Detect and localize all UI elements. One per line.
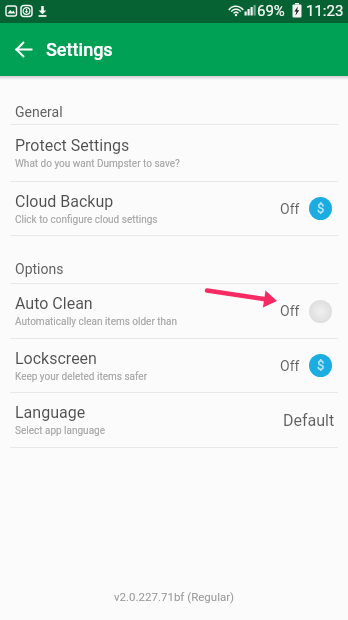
staticText: Default [283,411,335,430]
staticText: Click to configure cloud settings [15,214,158,226]
staticText: Automatically clean items older than [15,316,178,328]
button[interactable]: Protect Settings [0,125,348,181]
staticText: $ [317,201,325,216]
staticText: Off [280,303,300,319]
staticText: Options [15,261,64,277]
staticText: Language [15,403,86,422]
staticText: 11:23 [306,2,344,20]
staticText: Off [280,358,300,374]
staticText: Protect Settings [15,136,130,155]
staticText: Lockscreen [15,349,97,368]
staticText: v2.0.227.71bf (Regular) [114,590,235,603]
staticText: Settings [46,39,113,60]
staticText: Select app language [15,425,105,437]
button[interactable]: Cloud Backup [0,182,348,235]
staticText: $ [317,358,325,373]
staticText: Cloud Backup [15,192,114,211]
staticText: Auto Clean [15,294,93,313]
button[interactable] [8,34,40,66]
staticText: Keep your deleted items safer [15,371,148,383]
staticText: 69% [257,2,285,20]
button[interactable]: Auto Clean [0,284,348,338]
button[interactable]: Language [0,393,348,447]
staticText: General [15,104,63,120]
staticText: What do you want Dumpster to save? [15,158,180,170]
staticText: Off [280,201,300,217]
button[interactable]: Lockscreen [0,339,348,392]
